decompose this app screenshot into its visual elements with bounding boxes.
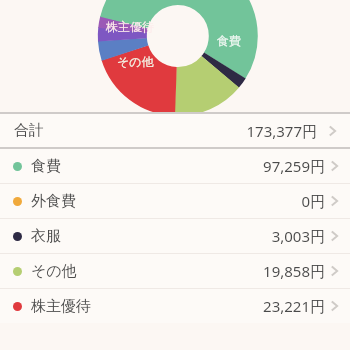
staticText: 97,259円 [263,156,325,176]
staticText: 0円 [301,191,325,211]
staticText: 株主優待 [106,19,154,34]
staticText: 23,221円 [263,296,325,316]
staticText: 合計 [14,121,44,140]
button[interactable]: 外食費 [0,184,350,218]
button[interactable]: 合計 [0,114,350,147]
button[interactable]: 詳細を表示 [326,157,344,175]
staticText: その他 [117,54,154,69]
staticText: 173,377円 [246,121,317,141]
button[interactable]: 衣服 [0,219,350,253]
staticText: 株主優待 [31,297,91,316]
staticText: 3,003円 [271,226,325,246]
button[interactable]: 食費 [0,149,350,183]
button[interactable]: 詳細を表示 [324,122,342,140]
button[interactable]: 株主優待 [0,289,350,323]
staticText: 食費 [217,33,241,48]
button[interactable]: その他 [0,254,350,288]
button[interactable]: 詳細を表示 [326,297,344,315]
staticText: 衣服 [31,227,61,246]
staticText: 外食費 [31,192,76,211]
staticText: 19,858円 [263,261,325,281]
button[interactable]: 詳細を表示 [326,227,344,245]
button[interactable]: 詳細を表示 [326,262,344,280]
staticText: その他 [31,262,77,281]
button[interactable]: 詳細を表示 [326,192,344,210]
staticText: 食費 [31,157,61,176]
